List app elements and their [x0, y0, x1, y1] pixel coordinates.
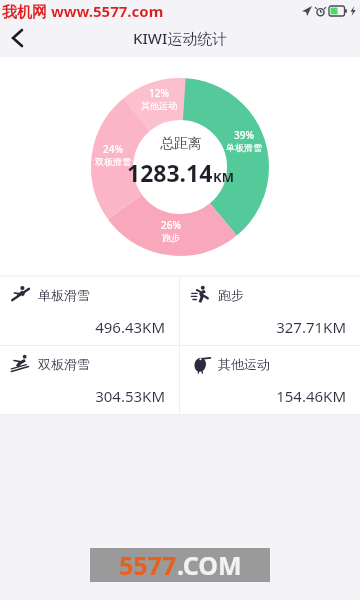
staticText: 单板滑雪	[38, 287, 90, 303]
staticText: 总距离	[160, 135, 202, 153]
staticText: 1283.14	[127, 157, 213, 188]
staticText: 327.71KM	[191, 317, 346, 337]
staticText: 24%	[103, 142, 123, 156]
button[interactable]: 跑步	[180, 277, 360, 345]
staticText: 双板滑雪	[95, 156, 131, 167]
staticText: 39%	[234, 128, 254, 142]
button[interactable]: 单板滑雪	[0, 277, 179, 345]
staticText: 26%	[161, 218, 181, 232]
staticText: 跑步	[162, 232, 180, 243]
staticText: 496.43KM	[11, 317, 165, 337]
staticText: 双板滑雪	[38, 356, 90, 372]
staticText: KM	[213, 168, 234, 186]
staticText: 304.53KM	[11, 386, 165, 406]
staticText: 5577	[119, 548, 177, 582]
staticText: KIWI运动统计	[133, 28, 228, 48]
staticText: 154.46KM	[191, 386, 346, 406]
staticText: 我机网 www.5577.com	[2, 1, 164, 21]
staticText: 其他运动	[141, 100, 177, 111]
button[interactable]: Back	[0, 22, 34, 54]
staticText: 12%	[149, 86, 169, 100]
button[interactable]: 双板滑雪	[0, 346, 179, 414]
button[interactable]: 其他运动	[180, 346, 360, 414]
staticText: .COM	[177, 548, 242, 582]
staticText: 单板滑雪	[226, 142, 262, 153]
staticText: 跑步	[218, 287, 244, 303]
staticText: 其他运动	[218, 356, 270, 372]
